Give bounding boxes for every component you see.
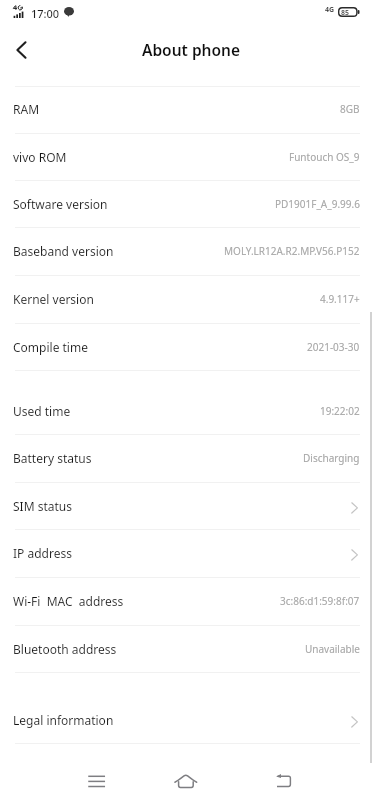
staticText: Kernel version (13, 291, 94, 307)
button[interactable]: Compile time (0, 324, 373, 371)
button[interactable]: Recent apps (75, 759, 119, 800)
staticText: RAM (13, 101, 40, 117)
button[interactable]: Wi-Fi MAC address (0, 578, 373, 626)
staticText: Battery status (13, 450, 92, 466)
staticText: PD1901F_A_9.99.6 (275, 197, 360, 211)
staticText: IP address (13, 545, 72, 561)
button[interactable]: Battery status (0, 435, 373, 483)
button[interactable]: IP address (0, 530, 373, 578)
staticText: Wi-Fi MAC address (13, 593, 124, 609)
staticText: 19:22:02 (320, 404, 360, 418)
staticText: Used time (13, 403, 71, 419)
staticText: 2021-03-30 (307, 340, 360, 354)
button[interactable]: Bluetooth address (0, 626, 373, 673)
staticText: Software version (13, 196, 108, 212)
staticText: MOLY.LR12A.R2.MP.V56.P152 (224, 244, 360, 258)
staticText: 8GB (340, 102, 360, 116)
staticText: Compile time (13, 339, 88, 355)
button[interactable]: SIM status (0, 483, 373, 530)
button[interactable]: Baseband version (0, 228, 373, 276)
staticText: 17:00 (31, 6, 60, 21)
staticText: 4.9.117+ (320, 292, 360, 306)
staticText: SIM status (13, 498, 72, 514)
button[interactable]: Legal information (0, 697, 373, 744)
staticText: About phone (142, 39, 241, 60)
button[interactable]: vivo ROM (0, 134, 373, 181)
staticText: Funtouch OS_9 (289, 150, 360, 164)
staticText: Bluetooth address (13, 641, 117, 657)
button[interactable]: Back (263, 759, 307, 800)
button[interactable]: Kernel version (0, 276, 373, 324)
button[interactable]: Home (165, 759, 209, 800)
staticText: Legal information (13, 712, 114, 728)
button[interactable]: Software version (0, 181, 373, 228)
button[interactable]: RAM (0, 86, 373, 134)
staticText: Unavailable (305, 642, 360, 656)
staticText: vivo ROM (13, 149, 67, 165)
staticText: Baseband version (13, 243, 114, 259)
staticText: 4G (325, 5, 335, 15)
button[interactable]: Back (1, 30, 41, 70)
staticText: 3c:86:d1:59:8f:07 (280, 594, 360, 608)
staticText: Discharging (303, 451, 360, 465)
staticText: 85 (341, 8, 350, 18)
button[interactable]: Used time (0, 388, 373, 435)
